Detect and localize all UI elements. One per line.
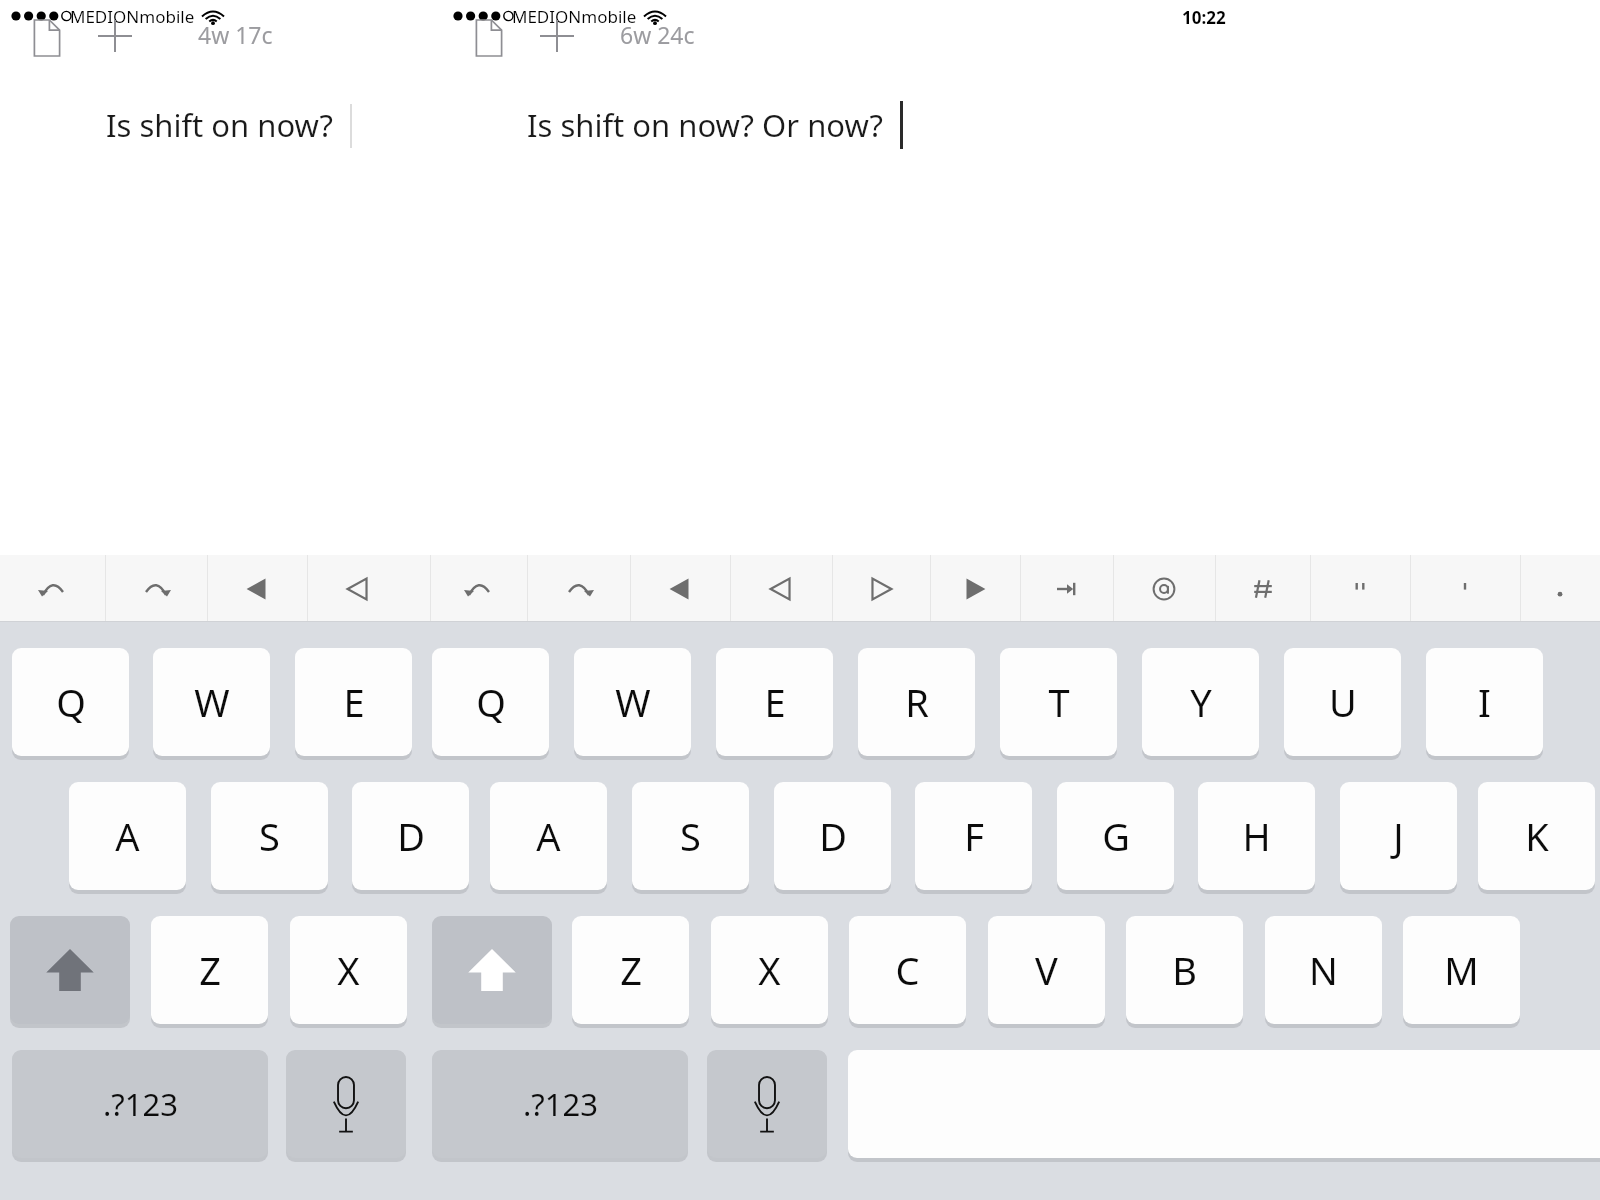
staticText: S [680, 810, 701, 862]
button[interactable]: Y [1142, 648, 1259, 756]
button[interactable]: Z [572, 916, 689, 1024]
staticText: H [1242, 810, 1271, 862]
button[interactable]: .?123 [432, 1050, 688, 1158]
staticText: .?123 [103, 1083, 178, 1125]
button[interactable]: REDO [527, 555, 630, 622]
button[interactable]: Q [12, 648, 129, 756]
button[interactable]: D [352, 782, 469, 890]
button[interactable]: QUOTE2 [1310, 555, 1410, 622]
button[interactable]: .?123 [12, 1050, 268, 1158]
staticText: 10:22 [1182, 6, 1226, 29]
button[interactable]: C [849, 916, 966, 1024]
staticText: Is shift on now? Or now? [527, 104, 883, 146]
button[interactable]: Dictate [286, 1050, 406, 1158]
button[interactable]: E [295, 648, 412, 756]
button[interactable]: A [490, 782, 607, 890]
button[interactable]: AT [1113, 555, 1215, 622]
button[interactable]: H [1198, 782, 1315, 890]
staticText: W [194, 676, 230, 728]
button[interactable]: TRI_R_O [832, 555, 930, 622]
staticText: K [1525, 810, 1549, 862]
button[interactable]: B [1126, 916, 1243, 1024]
staticText: 4w 17c [198, 19, 273, 50]
staticText: I [1478, 676, 1491, 728]
button[interactable]: W [574, 648, 691, 756]
staticText: G [1102, 810, 1130, 862]
button[interactable]: Q [432, 648, 549, 756]
staticText: R [905, 676, 929, 728]
button[interactable]: DOT [1520, 555, 1600, 622]
staticText: Is shift on now? [106, 104, 334, 146]
button[interactable]: U [1284, 648, 1401, 756]
staticText: A [115, 810, 140, 862]
staticText: Q [56, 676, 86, 728]
staticText: A [536, 810, 561, 862]
button[interactable]: TAB [1020, 555, 1113, 622]
button[interactable]: R [858, 648, 975, 756]
button[interactable]: G [1057, 782, 1174, 890]
button[interactable]: TRI_L_F [207, 555, 307, 622]
button[interactable]: Shift [10, 916, 130, 1024]
button[interactable]: TRI_R_F [930, 555, 1020, 622]
button[interactable]: UNDO [0, 555, 105, 622]
button[interactable]: QUOTE1 [1410, 555, 1520, 622]
staticText: J [1393, 810, 1404, 862]
staticText: Q [476, 676, 506, 728]
button[interactable]: V [988, 916, 1105, 1024]
staticText: T [1048, 676, 1070, 728]
button[interactable]: S [211, 782, 328, 890]
button[interactable]: K [1478, 782, 1595, 890]
button[interactable]: UNDO [430, 555, 527, 622]
staticText: C [895, 944, 920, 996]
staticText: E [343, 676, 365, 728]
button[interactable]: I [1426, 648, 1543, 756]
staticText: B [1172, 944, 1197, 996]
button[interactable]: S [632, 782, 749, 890]
staticText: Y [1190, 676, 1212, 728]
button[interactable]: REDO [105, 555, 207, 622]
staticText: W [615, 676, 651, 728]
button[interactable]: X [290, 916, 407, 1024]
staticText: Z [199, 944, 221, 996]
staticText: 6w 24c [620, 19, 695, 50]
button[interactable]: D [774, 782, 891, 890]
button[interactable]: N [1265, 916, 1382, 1024]
button[interactable]: T [1000, 648, 1117, 756]
staticText: E [764, 676, 786, 728]
staticText: MEDIONmobile [70, 5, 195, 28]
staticText: N [1309, 944, 1338, 996]
staticText: X [758, 944, 781, 996]
staticText: D [397, 810, 425, 862]
button[interactable]: J [1340, 782, 1457, 890]
button[interactable]: HASH [1215, 555, 1310, 622]
button[interactable]: TRI_L_O [307, 555, 409, 622]
staticText: F [964, 810, 984, 862]
button[interactable]: X [711, 916, 828, 1024]
button[interactable]: Shift on [432, 916, 552, 1024]
staticText: Z [620, 944, 642, 996]
staticText: .?123 [523, 1083, 598, 1125]
staticText: D [819, 810, 847, 862]
button[interactable]: Z [151, 916, 268, 1024]
button[interactable]: F [915, 782, 1032, 890]
button[interactable]: Dictate [707, 1050, 827, 1158]
staticText: S [259, 810, 280, 862]
staticText: M [1444, 944, 1479, 996]
staticText: MEDIONmobile [512, 5, 637, 28]
button[interactable]: E [716, 648, 833, 756]
staticText: V [1035, 944, 1058, 996]
button[interactable]: A [69, 782, 186, 890]
button[interactable]: TRI_L_O [730, 555, 832, 622]
button[interactable]: W [153, 648, 270, 756]
button[interactable]: TRI_L_F [630, 555, 730, 622]
button[interactable]: M [1403, 916, 1520, 1024]
staticText: X [337, 944, 360, 996]
staticText: U [1329, 676, 1357, 728]
